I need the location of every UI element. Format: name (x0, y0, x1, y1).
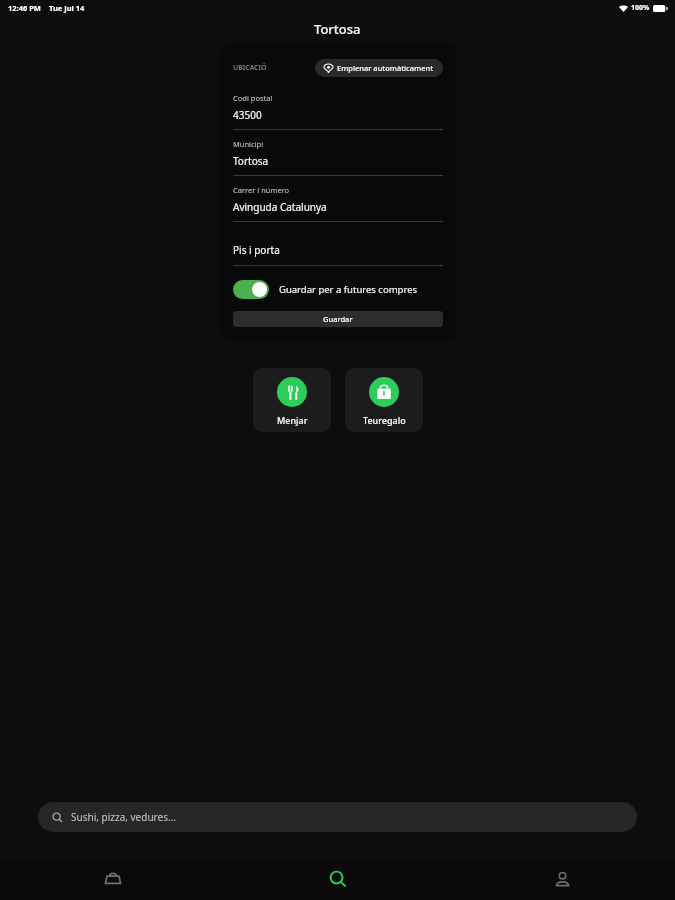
staticText: Teuregalo (363, 414, 406, 426)
staticText: Guardar (323, 314, 353, 324)
button[interactable]: Guardar (233, 311, 443, 327)
button[interactable]: Orders (0, 858, 225, 900)
staticText: Tortosa (314, 20, 361, 38)
button[interactable]: Sushi, pizza, vedures... (38, 802, 637, 832)
staticText: 43500 (233, 108, 262, 122)
staticText: Emplenar automàticament (337, 63, 434, 73)
staticText: Municipi (233, 139, 264, 149)
button[interactable]: Menjar (253, 368, 331, 432)
button[interactable]: Profile (450, 858, 675, 900)
staticText: Guardar per a futures compres (279, 283, 418, 296)
staticText: 100% (631, 3, 650, 13)
staticText: Sushi, pizza, vedures... (71, 810, 176, 824)
staticText: Avinguda Catalunya (233, 200, 327, 214)
staticText: UBICACIÓ (233, 63, 267, 73)
staticText: Menjar (277, 414, 308, 426)
button[interactable]: Teuregalo (345, 368, 423, 432)
button[interactable]: Guardar per a futures compres (233, 280, 443, 299)
staticText: 12:46 PM (8, 3, 41, 13)
button[interactable]: Search (225, 858, 450, 900)
staticText: Pis i porta (233, 243, 280, 257)
staticText: Tue Jul 14 (49, 3, 85, 13)
staticText: Carrer i número (233, 185, 290, 195)
staticText: Tortosa (233, 154, 269, 168)
staticText: Codi postal (233, 93, 273, 103)
button[interactable]: Emplenar automàticament (315, 59, 443, 77)
